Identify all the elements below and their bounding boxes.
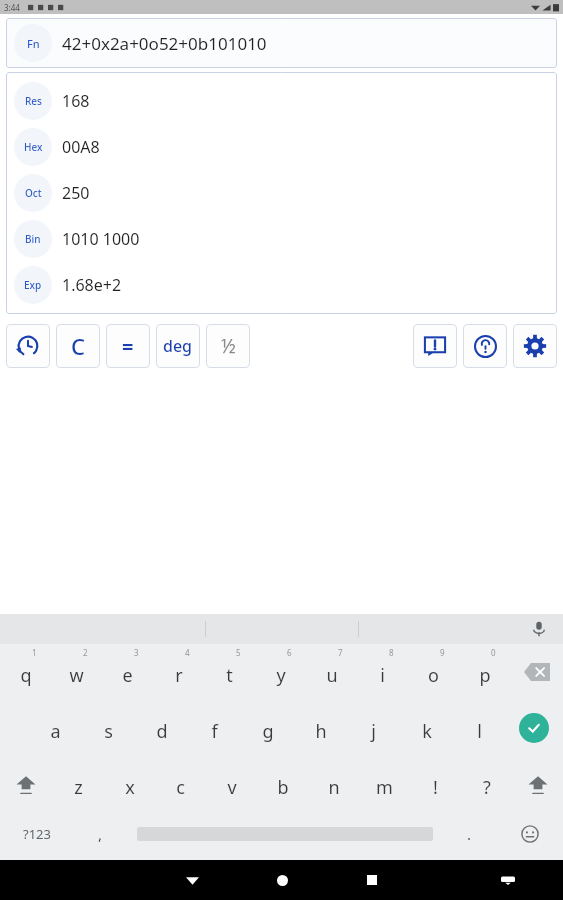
- staticText: s: [104, 719, 113, 744]
- button[interactable]: 3: [102, 644, 153, 700]
- staticText: 7: [338, 647, 343, 658]
- button[interactable]: x: [104, 756, 155, 812]
- staticText: ?123: [23, 825, 51, 843]
- button[interactable]: l: [453, 700, 506, 756]
- staticText: a: [50, 719, 61, 744]
- button[interactable]: Bin: [6, 216, 557, 262]
- button[interactable]: Recents: [357, 865, 387, 895]
- staticText: 3: [134, 647, 139, 658]
- button[interactable]: ½: [206, 324, 250, 368]
- staticText: Res: [25, 94, 42, 108]
- staticText: h: [315, 719, 327, 744]
- staticText: n: [328, 775, 340, 800]
- button[interactable]: =: [106, 324, 150, 368]
- button[interactable]: d: [135, 700, 188, 756]
- button[interactable]: C: [56, 324, 100, 368]
- button[interactable]: Feedback: [413, 324, 457, 368]
- button[interactable]: History: [6, 324, 50, 368]
- staticText: b: [277, 775, 289, 800]
- button[interactable]: v: [206, 756, 257, 812]
- button[interactable]: Hex: [6, 124, 557, 170]
- staticText: i: [380, 663, 385, 688]
- staticText: c: [176, 775, 185, 800]
- button[interactable]: n: [308, 756, 359, 812]
- staticText: l: [477, 719, 482, 744]
- button[interactable]: Voice input: [527, 617, 551, 641]
- button[interactable]: deg: [156, 324, 200, 368]
- staticText: m: [376, 775, 393, 800]
- staticText: 250: [62, 182, 90, 204]
- button[interactable]: s: [82, 700, 135, 756]
- button[interactable]: ,: [73, 812, 127, 856]
- staticText: t: [226, 663, 233, 688]
- button[interactable]: Fn: [14, 24, 52, 62]
- staticText: 168: [62, 90, 90, 112]
- staticText: 6: [287, 647, 292, 658]
- button[interactable]: 7: [306, 644, 357, 700]
- staticText: z: [74, 775, 83, 800]
- button[interactable]: h: [294, 700, 347, 756]
- button[interactable]: b: [257, 756, 308, 812]
- button[interactable]: Enter: [506, 700, 562, 756]
- button[interactable]: 4: [153, 644, 204, 700]
- staticText: !: [433, 775, 438, 800]
- staticText: 42+0x2a+0o52+0b101010: [62, 32, 267, 55]
- button[interactable]: Shift: [512, 756, 563, 812]
- staticText: 1010 1000: [62, 228, 140, 250]
- staticText: 0: [491, 647, 496, 658]
- staticText: 5: [236, 647, 241, 658]
- button[interactable]: a: [28, 700, 82, 756]
- button[interactable]: j: [347, 700, 400, 756]
- button[interactable]: Shift: [0, 756, 52, 812]
- button[interactable]: Space: [127, 812, 442, 856]
- button[interactable]: Emoji: [496, 812, 563, 856]
- button[interactable]: z: [52, 756, 104, 812]
- button[interactable]: c: [155, 756, 206, 812]
- button[interactable]: Fn: [6, 18, 557, 68]
- staticText: y: [276, 663, 286, 688]
- button[interactable]: ?: [461, 756, 512, 812]
- staticText: u: [326, 663, 338, 688]
- button[interactable]: 2: [51, 644, 102, 700]
- staticText: =: [122, 333, 134, 360]
- staticText: .: [467, 824, 472, 844]
- button[interactable]: 6: [255, 644, 306, 700]
- staticText: Exp: [24, 278, 42, 292]
- button[interactable]: 0: [459, 644, 510, 700]
- button[interactable]: g: [241, 700, 294, 756]
- button[interactable]: .: [442, 812, 496, 856]
- button[interactable]: 9: [408, 644, 459, 700]
- staticText: p: [479, 663, 491, 688]
- button[interactable]: Oct: [6, 170, 557, 216]
- staticText: ?: [483, 775, 491, 800]
- staticText: 2: [83, 647, 88, 658]
- button[interactable]: 8: [357, 644, 408, 700]
- staticText: ,: [98, 824, 103, 844]
- staticText: deg: [163, 335, 193, 357]
- staticText: Oct: [25, 186, 42, 200]
- staticText: v: [227, 775, 237, 800]
- button[interactable]: 5: [204, 644, 255, 700]
- button[interactable]: Exp: [6, 262, 557, 308]
- button[interactable]: Hide keyboard: [493, 865, 523, 895]
- button[interactable]: Backspace: [510, 644, 563, 700]
- button[interactable]: Res: [6, 78, 557, 124]
- staticText: 8: [389, 647, 394, 658]
- button[interactable]: m: [359, 756, 410, 812]
- staticText: Bin: [25, 232, 41, 246]
- button[interactable]: Help: [463, 324, 507, 368]
- button[interactable]: f: [188, 700, 241, 756]
- button[interactable]: ?123: [0, 812, 73, 856]
- button[interactable]: Back: [177, 865, 207, 895]
- staticText: 00A8: [62, 136, 100, 158]
- button[interactable]: Home: [267, 865, 297, 895]
- button[interactable]: Settings: [513, 324, 557, 368]
- staticText: 9: [440, 647, 445, 658]
- staticText: 4: [185, 647, 190, 658]
- button[interactable]: !: [410, 756, 461, 812]
- staticText: k: [422, 719, 432, 744]
- staticText: o: [428, 663, 439, 688]
- button[interactable]: k: [400, 700, 453, 756]
- button[interactable]: 1: [0, 644, 51, 700]
- staticText: Hex: [24, 140, 43, 154]
